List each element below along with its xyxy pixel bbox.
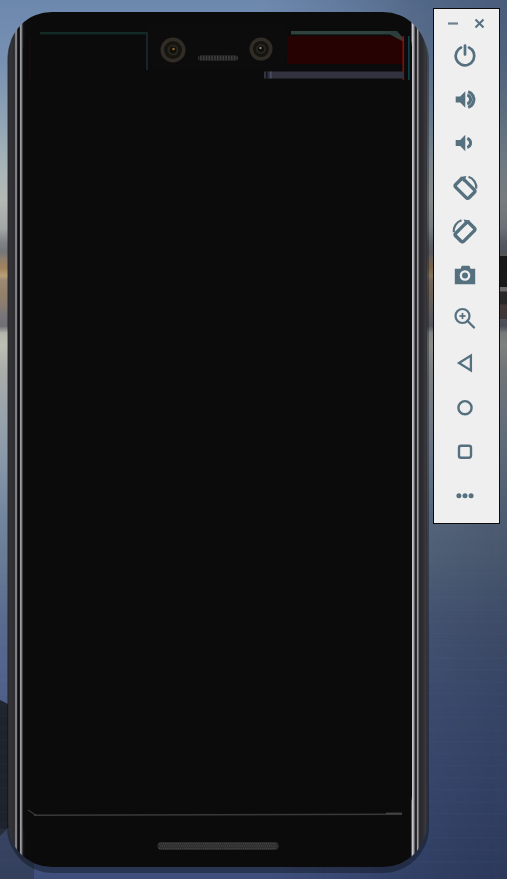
button[interactable]: Home [434, 393, 499, 437]
button[interactable]: Volume up [434, 85, 499, 129]
button[interactable]: Zoom [434, 305, 499, 349]
button[interactable]: Overview [434, 437, 499, 481]
button[interactable]: Minimize [434, 9, 467, 39]
button[interactable]: Rotate right [434, 217, 499, 261]
button[interactable]: Rotate left [434, 173, 499, 217]
button[interactable]: More [434, 481, 499, 523]
button[interactable]: Take screenshot [434, 261, 499, 305]
button[interactable]: Close [467, 9, 499, 39]
button[interactable]: Back [434, 349, 499, 393]
button[interactable]: Power [434, 41, 499, 85]
button[interactable]: Volume down [434, 129, 499, 173]
